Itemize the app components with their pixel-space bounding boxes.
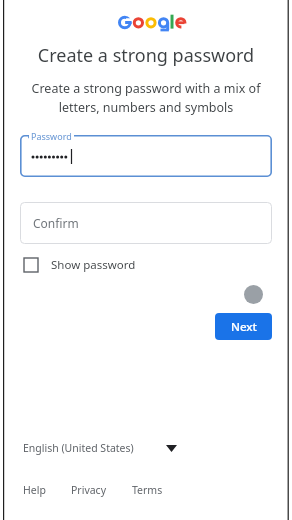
button[interactable]: Confirm — [20, 202, 272, 244]
staticText: Password — [31, 130, 72, 142]
button[interactable]: Terms — [132, 480, 163, 500]
button[interactable]: Privacy — [71, 480, 107, 500]
staticText: Help — [23, 483, 46, 497]
staticText: Show password — [51, 257, 136, 273]
staticText: Confirm — [33, 215, 79, 231]
staticText: Next — [231, 319, 257, 335]
button[interactable]: Account avatar — [244, 285, 263, 304]
staticText: Create a strong password — [20, 43, 272, 68]
button[interactable]: Show password — [23, 254, 137, 276]
staticText: Terms — [132, 483, 163, 497]
staticText: Create a strong password with a mix of l… — [20, 80, 272, 116]
button[interactable]: Next — [215, 313, 272, 340]
staticText: Privacy — [71, 483, 107, 497]
button[interactable]: English (United States) — [23, 438, 177, 458]
button[interactable]: Password — [20, 135, 272, 177]
staticText: English (United States) — [23, 441, 134, 455]
button[interactable]: Help — [23, 480, 46, 500]
